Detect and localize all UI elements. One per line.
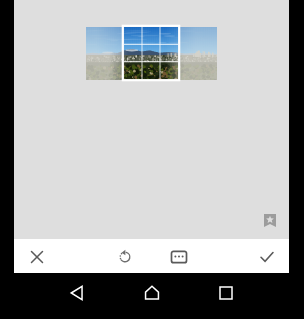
button[interactable]: Recent apps: [206, 277, 248, 315]
button[interactable]: Aspect ratio: [166, 241, 194, 271]
button[interactable]: Cancel: [24, 241, 52, 271]
button[interactable]: Watermark: [254, 204, 278, 228]
button[interactable]: Home: [132, 277, 174, 315]
button[interactable]: Done: [254, 241, 282, 271]
button[interactable]: Rotate: [112, 241, 140, 271]
button[interactable]: Back: [57, 277, 99, 315]
